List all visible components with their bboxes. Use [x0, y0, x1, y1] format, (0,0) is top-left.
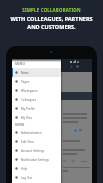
staticText: MORE: [15, 123, 25, 127]
staticText: MENU: [15, 62, 25, 66]
staticText: Log Out: [21, 176, 33, 180]
staticText: Account Settings: [21, 149, 45, 153]
button[interactable]: Help: [12, 164, 61, 173]
staticText: My Profile: [21, 107, 35, 111]
button[interactable]: My Profile: [12, 104, 61, 113]
staticText: AND CUSTOMERS.: [27, 23, 76, 30]
staticText: Notification Settings: [21, 158, 50, 162]
staticText: SIMPLE COLLABORATION: [22, 7, 81, 13]
button[interactable]: Administration: [12, 128, 61, 137]
staticText: Administration: [21, 131, 42, 135]
button[interactable]: Pages: [12, 77, 61, 86]
staticText: Pages: [21, 80, 30, 84]
button[interactable]: Log Out: [12, 173, 61, 182]
button[interactable]: Workspaces: [12, 86, 61, 95]
staticText: Colleagues: [21, 98, 37, 102]
button[interactable]: Colleagues: [12, 95, 61, 104]
staticText: Help: [21, 167, 28, 171]
staticText: News: [21, 71, 29, 75]
staticText: WITH COLLEAGUES, PARTNERS: [10, 15, 93, 22]
button[interactable]: Edit View: [12, 137, 61, 146]
staticText: Workspaces: [21, 89, 38, 93]
button[interactable]: Notification Settings: [12, 155, 61, 164]
staticText: Edit View: [21, 140, 34, 144]
button[interactable]: News: [12, 68, 61, 77]
staticText: My Files: [21, 116, 33, 120]
button[interactable]: My Files: [12, 113, 61, 122]
button[interactable]: Account Settings: [12, 146, 61, 155]
